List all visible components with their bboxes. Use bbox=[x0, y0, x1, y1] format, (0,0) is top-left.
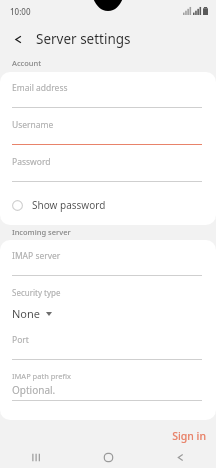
button[interactable]: Username bbox=[0, 119, 216, 156]
staticText: IMAP path prefix bbox=[12, 371, 72, 381]
staticText: Port bbox=[12, 334, 29, 346]
staticText: Security type bbox=[12, 287, 61, 298]
button[interactable]: Back bbox=[6, 27, 30, 51]
staticText: 10:00 bbox=[10, 6, 31, 17]
button[interactable]: Recent apps bbox=[0, 447, 72, 468]
button[interactable]: Back bbox=[144, 447, 216, 468]
staticText: Password bbox=[12, 156, 51, 168]
button[interactable]: Port bbox=[0, 334, 216, 371]
button[interactable]: Home bbox=[72, 447, 144, 468]
staticText: Show password bbox=[32, 198, 106, 212]
staticText: Account bbox=[12, 58, 42, 68]
button[interactable]: IMAP path prefix bbox=[0, 371, 216, 412]
staticText: Server settings bbox=[36, 30, 131, 48]
staticText: Optional. bbox=[12, 383, 56, 397]
button[interactable]: IMAP server bbox=[0, 250, 216, 287]
button[interactable]: Password bbox=[0, 156, 216, 193]
button[interactable]: Show password bbox=[0, 193, 216, 217]
staticText: Username bbox=[12, 119, 54, 131]
staticText: IMAP server bbox=[12, 250, 61, 262]
button[interactable]: Security type bbox=[0, 287, 216, 334]
staticText: Email address bbox=[12, 82, 68, 94]
staticText: Sign in bbox=[172, 429, 206, 443]
staticText: Incoming server bbox=[12, 227, 71, 237]
button[interactable]: Email address bbox=[0, 82, 216, 119]
button[interactable]: Sign in bbox=[162, 426, 216, 446]
staticText: None bbox=[12, 306, 41, 321]
